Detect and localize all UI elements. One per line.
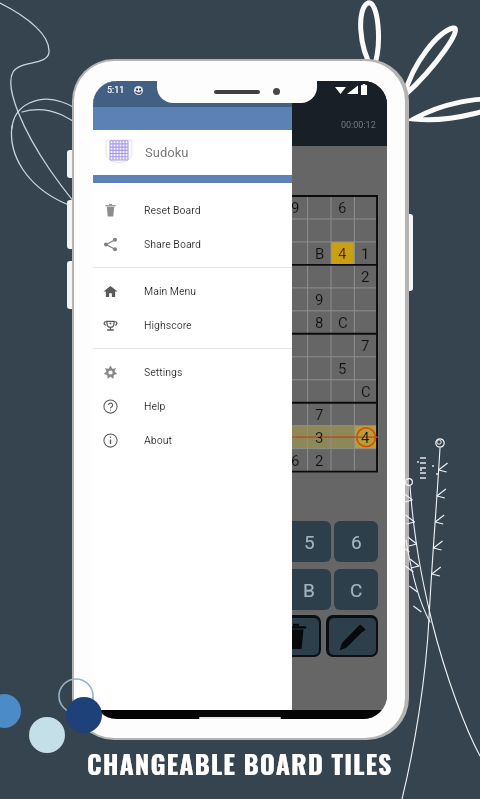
staticText: Main Menu xyxy=(144,285,197,297)
button[interactable]: Reset Board xyxy=(93,193,292,227)
staticText: 4 xyxy=(361,429,370,447)
button[interactable]: Notes xyxy=(326,615,378,657)
button[interactable]: 6 xyxy=(334,521,378,562)
button[interactable]: Highscore xyxy=(93,308,292,342)
staticText: 9 xyxy=(315,291,324,309)
button[interactable]: Sudoku xyxy=(93,130,292,175)
staticText: 2 xyxy=(315,452,324,470)
staticText: 7 xyxy=(315,406,324,424)
button[interactable]: 5 xyxy=(287,521,331,562)
staticText: Highscore xyxy=(144,319,192,331)
staticText: C xyxy=(350,579,363,601)
button[interactable]: Share Board xyxy=(93,227,292,261)
staticText: CHANGEABLE BOARD TILES xyxy=(87,744,393,783)
staticText: 5 xyxy=(304,531,315,553)
staticText: 9 xyxy=(291,199,300,217)
staticText: Help xyxy=(144,400,166,412)
staticText: Reset Board xyxy=(144,204,201,216)
staticText: 8 xyxy=(315,314,324,332)
staticText: About xyxy=(144,434,172,446)
staticText: 2 xyxy=(361,268,370,286)
button[interactable]: Help xyxy=(93,389,292,423)
staticText: 00:00:12 xyxy=(341,120,376,131)
button[interactable]: Erase xyxy=(269,615,321,657)
staticText: Share Board xyxy=(144,238,201,250)
staticText: Sudoku xyxy=(145,145,189,160)
staticText: 7 xyxy=(361,337,370,355)
staticText: 6 xyxy=(338,199,347,217)
button[interactable]: Main Menu xyxy=(93,274,292,308)
staticText: C xyxy=(361,383,371,401)
button[interactable]: B xyxy=(287,569,331,610)
staticText: Settings xyxy=(144,366,183,378)
staticText: 6 xyxy=(351,531,362,553)
staticText: B xyxy=(303,579,315,601)
staticText: B xyxy=(315,245,325,263)
button[interactable]: C xyxy=(334,569,378,610)
staticText: 1 xyxy=(361,245,370,263)
staticText: 3 xyxy=(315,429,324,447)
staticText: 6 xyxy=(291,452,300,470)
button[interactable]: About xyxy=(93,423,292,457)
staticText: C xyxy=(338,314,348,332)
staticText: 5:11 xyxy=(107,85,125,96)
button[interactable]: Settings xyxy=(93,355,292,389)
staticText: 5 xyxy=(338,360,347,378)
staticText: 4 xyxy=(338,245,347,263)
